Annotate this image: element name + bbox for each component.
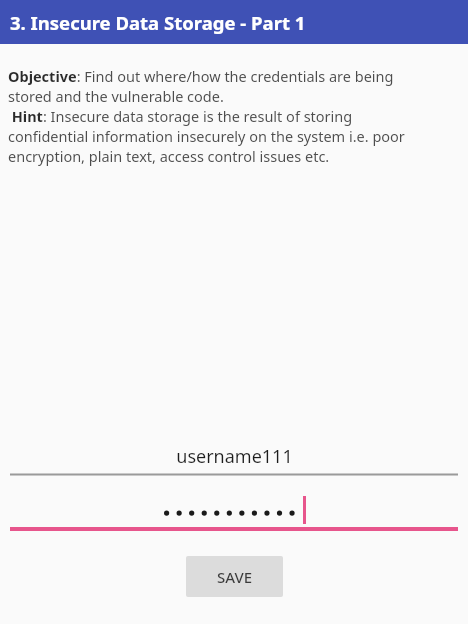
staticText: encryption, plain text, access control i… (8, 146, 330, 166)
staticText: username111 (176, 444, 293, 469)
button[interactable]: 3. Insecure Data Storage - Part 1 (0, 0, 468, 44)
staticText: 3. Insecure Data Storage - Part 1 (10, 10, 306, 35)
button[interactable] (0, 493, 468, 527)
button[interactable]: SAVE (186, 556, 283, 597)
staticText: SAVE (217, 567, 253, 587)
staticText: confidential information insecurely on t… (8, 126, 405, 146)
button[interactable]: username111 (0, 439, 468, 473)
staticText: Objective: Find out where/how the creden… (8, 66, 394, 86)
staticText: stored and the vulnerable code. (8, 86, 224, 106)
staticText: Hint: Insecure data storage is the resul… (8, 106, 353, 126)
